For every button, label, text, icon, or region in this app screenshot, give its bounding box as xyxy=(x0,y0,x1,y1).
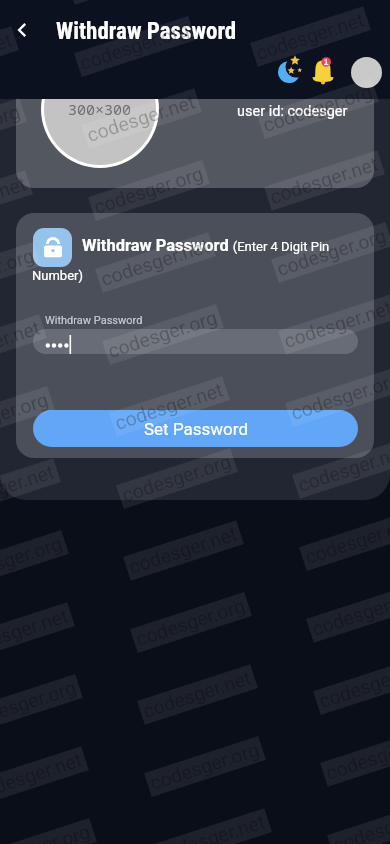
button[interactable]: Back xyxy=(2,8,42,52)
button[interactable] xyxy=(33,329,358,354)
staticText: codesger.net xyxy=(267,152,382,209)
staticText: codesger.net xyxy=(0,748,86,805)
staticText: codesger.org xyxy=(274,224,390,281)
button[interactable]: Dark mode xyxy=(274,54,308,88)
button[interactable]: Notifications xyxy=(310,52,344,86)
staticText: codesger.org xyxy=(0,100,24,157)
staticText: codesger.net xyxy=(70,0,185,3)
staticText: codesger.net xyxy=(154,810,269,844)
staticText: Number) xyxy=(32,268,83,283)
staticText: codesger.net xyxy=(126,522,241,579)
staticText: codesger.org xyxy=(0,388,52,445)
staticText: codesger.net xyxy=(295,440,390,497)
staticText: codesger.net xyxy=(0,604,72,661)
staticText: Set Password xyxy=(144,419,248,439)
staticText: user id: codesger xyxy=(237,103,348,120)
staticText: Withdraw Password (Enter 4 Digit Pin xyxy=(82,236,330,255)
staticText: codesger.org xyxy=(288,368,390,425)
staticText: codesger.org xyxy=(91,162,207,219)
staticText: codesger.net xyxy=(98,234,213,291)
button[interactable]: Set Password xyxy=(33,410,358,447)
staticText: Withdraw Password xyxy=(56,18,237,45)
staticText: codesger.org xyxy=(77,18,193,75)
staticText: codesger.net xyxy=(0,460,58,517)
button[interactable]: Profile xyxy=(351,57,382,88)
staticText: codesger.org xyxy=(302,512,390,569)
staticText: Withdraw Password xyxy=(45,314,143,327)
staticText: codesger.org xyxy=(260,80,376,137)
staticText: codesger.net xyxy=(253,8,368,65)
staticText: codesger.net xyxy=(0,28,16,85)
staticText: codesger.org xyxy=(0,676,80,733)
staticText: codesger.net xyxy=(0,316,44,373)
staticText: codesger.org xyxy=(330,800,390,844)
staticText: codesger.net xyxy=(281,296,390,353)
staticText: codesger.net xyxy=(0,172,30,229)
staticText: codesger.org xyxy=(0,820,94,844)
staticText: codesger.net xyxy=(309,584,390,641)
staticText: codesger.org xyxy=(133,594,249,651)
staticText: codesger.org xyxy=(0,532,66,589)
staticText: codesger.org xyxy=(316,656,390,713)
staticText: 300×300 xyxy=(68,99,132,119)
staticText: codesger.net xyxy=(140,666,255,723)
staticText: codesger.net xyxy=(112,378,227,435)
staticText: codesger.org xyxy=(0,244,38,301)
staticText: codesger.org xyxy=(147,738,263,795)
staticText: codesger.net xyxy=(84,90,199,147)
staticText: codesger.org xyxy=(105,306,221,363)
staticText: codesger.net xyxy=(323,728,390,785)
staticText: codesger.org xyxy=(119,450,235,507)
